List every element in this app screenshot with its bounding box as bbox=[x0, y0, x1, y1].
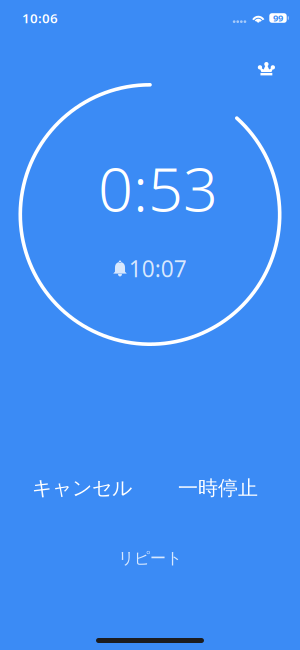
button[interactable]: リピート bbox=[96, 540, 204, 576]
button[interactable]: Premium bbox=[247, 51, 286, 86]
staticText: リピート bbox=[118, 548, 182, 568]
staticText: 10:06 bbox=[22, 9, 58, 27]
staticText: 99 bbox=[273, 12, 283, 24]
button[interactable]: キャンセル bbox=[14, 465, 150, 511]
staticText: 0:53 bbox=[98, 147, 218, 228]
button[interactable]: 一時停止 bbox=[150, 465, 286, 511]
staticText: キャンセル bbox=[32, 476, 132, 500]
staticText: 10:07 bbox=[129, 253, 187, 283]
staticText: 一時停止 bbox=[178, 476, 258, 500]
